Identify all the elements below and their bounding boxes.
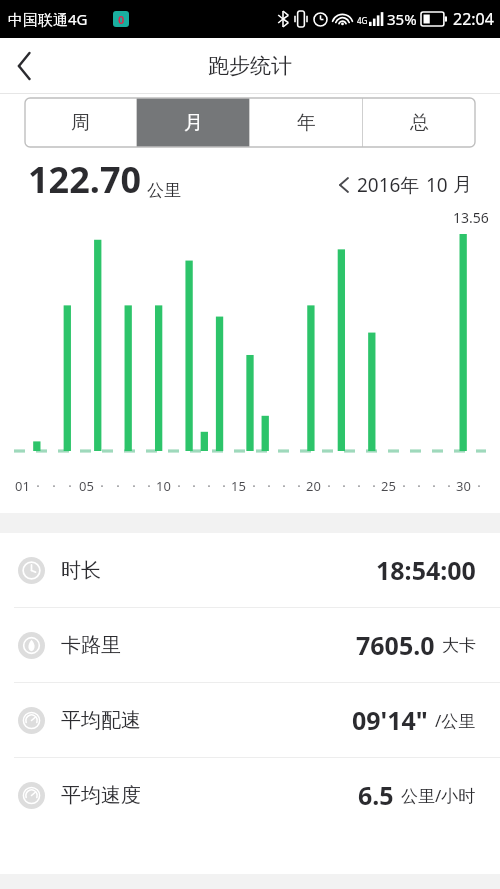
staticText: · [297, 477, 301, 495]
button[interactable]: Back [0, 41, 50, 91]
staticText: 30 [456, 477, 471, 495]
staticText: 月 [453, 173, 472, 197]
staticText: · [372, 477, 376, 495]
staticText: 时长 [61, 558, 101, 583]
staticText: · [447, 477, 451, 495]
staticText: 平均配速 [61, 708, 141, 733]
staticText: 6.5 [358, 778, 394, 812]
button[interactable]: 周 [25, 98, 136, 147]
staticText: · [222, 477, 226, 495]
staticText: · [267, 477, 271, 495]
staticText: · [100, 477, 104, 495]
button[interactable]: 总 [363, 98, 475, 147]
staticText: 10 [156, 477, 171, 495]
staticText: · [252, 477, 256, 495]
button[interactable]: 月 [137, 98, 249, 147]
staticText: 月 [184, 111, 203, 135]
staticText: 跑步统计 [208, 53, 292, 79]
staticText: 4G [357, 15, 368, 26]
staticText: · [177, 477, 181, 495]
button[interactable]: 时长 [0, 533, 500, 607]
staticText: 7605.0 [356, 628, 435, 662]
staticText: 09'14" [352, 703, 428, 737]
button[interactable]: 平均速度 [0, 758, 500, 832]
staticText: 22:04 [453, 8, 494, 30]
staticText: · [52, 477, 56, 495]
button[interactable]: 平均配速 [0, 683, 500, 757]
staticText: 13.56 [453, 208, 489, 227]
staticText: 年 [297, 111, 316, 135]
staticText: · [357, 477, 361, 495]
staticText: 25 [381, 477, 396, 495]
staticText: 05 [79, 477, 94, 495]
staticText: 平均速度 [61, 783, 141, 808]
staticText: /公里 [435, 709, 476, 732]
staticText: 0 [118, 12, 125, 27]
staticText: 35% [387, 9, 417, 29]
staticText: 公里/小时 [401, 784, 476, 807]
button[interactable]: 2016年 [340, 172, 472, 198]
staticText: · [477, 477, 481, 495]
staticText: · [342, 477, 346, 495]
staticText: 卡路里 [61, 633, 121, 658]
staticText: 2016年 [357, 172, 420, 198]
button[interactable]: 年 [250, 98, 362, 147]
staticText: · [147, 477, 151, 495]
staticText: 总 [410, 111, 429, 135]
staticText: 大卡 [442, 635, 476, 656]
staticText: 122.70 [28, 155, 142, 204]
staticText: · [36, 477, 40, 495]
staticText: · [282, 477, 286, 495]
staticText: · [116, 477, 120, 495]
staticText: · [132, 477, 136, 495]
staticText: · [417, 477, 421, 495]
staticText: · [402, 477, 406, 495]
staticText: 01 [15, 477, 30, 495]
staticText: · [432, 477, 436, 495]
button[interactable]: 卡路里 [0, 608, 500, 682]
staticText: · [327, 477, 331, 495]
staticText: 中国联通4G [8, 9, 88, 29]
staticText: 公里 [147, 180, 181, 201]
staticText: 10 [426, 172, 448, 198]
staticText: 周 [71, 111, 90, 135]
staticText: 15 [231, 477, 246, 495]
staticText: · [68, 477, 72, 495]
staticText: 18:54:00 [376, 553, 476, 587]
staticText: · [192, 477, 196, 495]
staticText: · [207, 477, 211, 495]
staticText: 20 [306, 477, 321, 495]
